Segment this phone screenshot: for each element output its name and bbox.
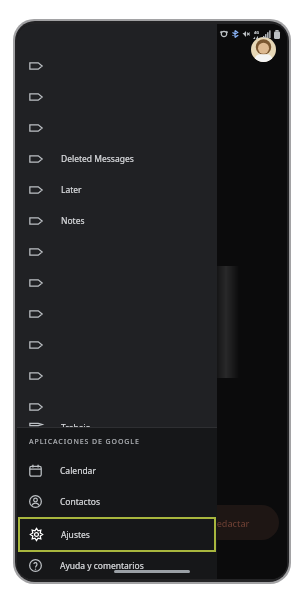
staticText: Ajustes — [61, 529, 90, 541]
button[interactable]: Etiqueta — [17, 391, 217, 422]
button[interactable]: Etiqueta — [17, 298, 217, 329]
staticText: Ayuda y comentarios — [60, 560, 144, 572]
button[interactable]: Later — [17, 174, 217, 205]
staticText: Notes — [61, 215, 85, 227]
button[interactable]: Contactos — [17, 486, 217, 517]
staticText: APLICACIONES DE GOOGLE — [29, 437, 140, 447]
button[interactable]: Etiqueta — [17, 329, 217, 360]
button[interactable]: Etiqueta — [17, 50, 217, 81]
button[interactable]: Etiqueta — [17, 112, 217, 143]
staticText: Trabajo — [61, 422, 91, 427]
button[interactable]: Etiqueta — [17, 360, 217, 391]
staticText: Deleted Messages — [61, 153, 134, 165]
button[interactable]: Notes — [17, 205, 217, 236]
staticText: Contactos — [60, 496, 100, 508]
button[interactable]: Etiqueta — [17, 81, 217, 112]
button[interactable]: Etiqueta — [17, 236, 217, 267]
button[interactable]: Trabajo — [17, 422, 217, 427]
staticText: 4G — [254, 30, 260, 35]
staticText: Calendar — [60, 465, 96, 477]
staticText: Redactar — [211, 517, 250, 529]
button[interactable]: Cuenta de Google — [251, 37, 276, 62]
button[interactable]: Redactar — [187, 505, 279, 540]
button[interactable]: Ajustes — [18, 517, 216, 552]
button[interactable]: Etiqueta — [17, 267, 217, 298]
staticText: Later — [61, 184, 82, 196]
button[interactable]: Ayuda y comentarios — [17, 552, 217, 579]
button[interactable]: Deleted Messages — [17, 143, 217, 174]
button[interactable]: Calendar — [17, 455, 217, 486]
